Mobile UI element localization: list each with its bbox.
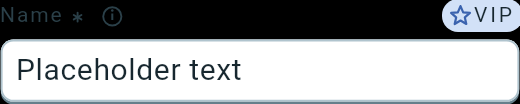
- staticText: VIP: [474, 3, 515, 28]
- other: Required: [68, 7, 88, 27]
- staticText: Name: [0, 3, 64, 28]
- button[interactable]: Placeholder text: [0, 0, 520, 104]
- button[interactable]: More information: [100, 4, 125, 29]
- staticText: Placeholder text: [16, 52, 243, 87]
- button[interactable]: VIP: [442, 0, 520, 32]
